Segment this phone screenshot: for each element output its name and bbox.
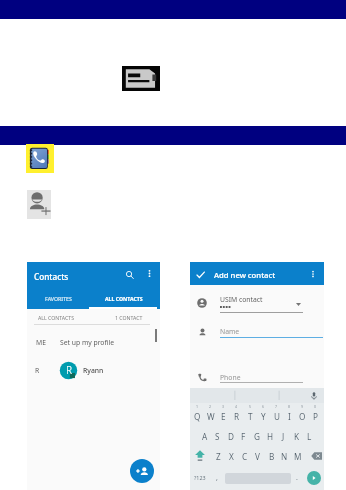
staticText: 0: [314, 404, 317, 409]
staticText: S: [215, 431, 220, 442]
button[interactable]: A: [198, 426, 211, 446]
staticText: .: [296, 473, 298, 483]
button[interactable]: 4: [230, 403, 243, 423]
staticText: C: [242, 451, 248, 462]
button[interactable]: G: [250, 426, 263, 446]
button[interactable]: 0: [309, 403, 322, 423]
staticText: Q: [194, 411, 201, 422]
button[interactable]: H: [264, 426, 277, 446]
staticText: R: [66, 363, 72, 377]
button[interactable]: .: [292, 468, 302, 487]
staticText: G: [254, 431, 260, 442]
staticText: Add new contact: [214, 270, 276, 280]
staticText: 9: [301, 404, 304, 409]
button[interactable]: N: [278, 446, 291, 466]
staticText: F: [241, 431, 246, 442]
staticText: ALL CONTACTS: [38, 314, 75, 321]
button[interactable]: J: [277, 426, 290, 446]
button[interactable]: F: [237, 426, 250, 446]
button[interactable]: 7: [270, 403, 283, 423]
staticText: E: [221, 411, 226, 422]
staticText: R: [234, 411, 240, 422]
staticText: H: [267, 431, 274, 442]
button[interactable]: Z: [212, 446, 225, 466]
button[interactable]: Create contact: [130, 459, 154, 483]
button[interactable]: 2: [204, 403, 217, 423]
staticText: L: [307, 431, 312, 442]
staticText: Z: [216, 451, 221, 462]
staticText: N: [281, 451, 288, 462]
button[interactable]: Enter: [307, 471, 321, 485]
staticText: Set up my profile: [60, 338, 115, 347]
button[interactable]: FAVORITES: [27, 287, 89, 309]
staticText: ?123: [194, 474, 206, 481]
staticText: P: [313, 411, 318, 422]
button[interactable]: More options: [308, 269, 318, 279]
staticText: B: [269, 451, 275, 462]
staticText: 1: [196, 404, 199, 409]
staticText: Y: [261, 411, 266, 422]
button[interactable]: S: [211, 426, 224, 446]
staticText: ME: [36, 338, 46, 347]
staticText: 5: [249, 404, 252, 409]
staticText: 1 CONTACT: [115, 314, 143, 321]
button[interactable]: ME: [27, 330, 160, 354]
button[interactable]: 8: [283, 403, 296, 423]
staticText: ,: [216, 473, 218, 483]
button[interactable]: 3: [217, 403, 230, 423]
button[interactable]: 9: [296, 403, 309, 423]
button[interactable]: C: [238, 446, 251, 466]
staticText: I: [288, 411, 291, 422]
staticText: 2: [209, 404, 212, 409]
staticText: T: [248, 411, 253, 422]
staticText: Name: [220, 327, 240, 336]
staticText: A: [202, 431, 208, 442]
staticText: USIM contact: [220, 295, 263, 304]
staticText: Phone: [220, 373, 241, 382]
staticText: W: [207, 411, 215, 422]
button[interactable]: Search: [124, 269, 136, 281]
staticText: 6: [262, 404, 265, 409]
staticText: 3: [222, 404, 225, 409]
staticText: 8: [288, 404, 291, 409]
staticText: V: [255, 451, 260, 462]
staticText: ALL CONTACTS: [105, 295, 143, 302]
button[interactable]: More options: [144, 268, 155, 279]
button[interactable]: B: [265, 446, 278, 466]
staticText: M: [294, 451, 302, 462]
button[interactable]: 6: [257, 403, 270, 423]
button[interactable]: 5: [244, 403, 257, 423]
button[interactable]: ALL CONTACTS: [89, 287, 160, 309]
staticText: U: [274, 411, 280, 422]
button[interactable]: ?123: [193, 468, 207, 487]
button[interactable]: X: [225, 446, 238, 466]
staticText: D: [228, 431, 234, 442]
staticText: 7: [275, 404, 278, 409]
button[interactable]: L: [303, 426, 316, 446]
button[interactable]: Save: [195, 269, 206, 280]
staticText: X: [229, 451, 234, 462]
staticText: Contacts: [34, 271, 69, 282]
button[interactable]: R: [27, 359, 160, 381]
staticText: K: [294, 431, 300, 442]
button[interactable]: 1: [191, 403, 204, 423]
button[interactable]: K: [290, 426, 303, 446]
staticText: Ryann: [83, 366, 104, 375]
button[interactable]: ,: [212, 468, 222, 487]
staticText: 4: [235, 404, 238, 409]
button[interactable]: Backspace: [309, 446, 323, 466]
button[interactable]: Shift: [193, 446, 207, 466]
staticText: J: [282, 431, 285, 442]
staticText: O: [299, 411, 306, 422]
staticText: FAVORITES: [45, 295, 72, 302]
button[interactable]: D: [224, 426, 237, 446]
button[interactable]: V: [251, 446, 264, 466]
button[interactable]: M: [291, 446, 304, 466]
staticText: R: [35, 366, 40, 375]
